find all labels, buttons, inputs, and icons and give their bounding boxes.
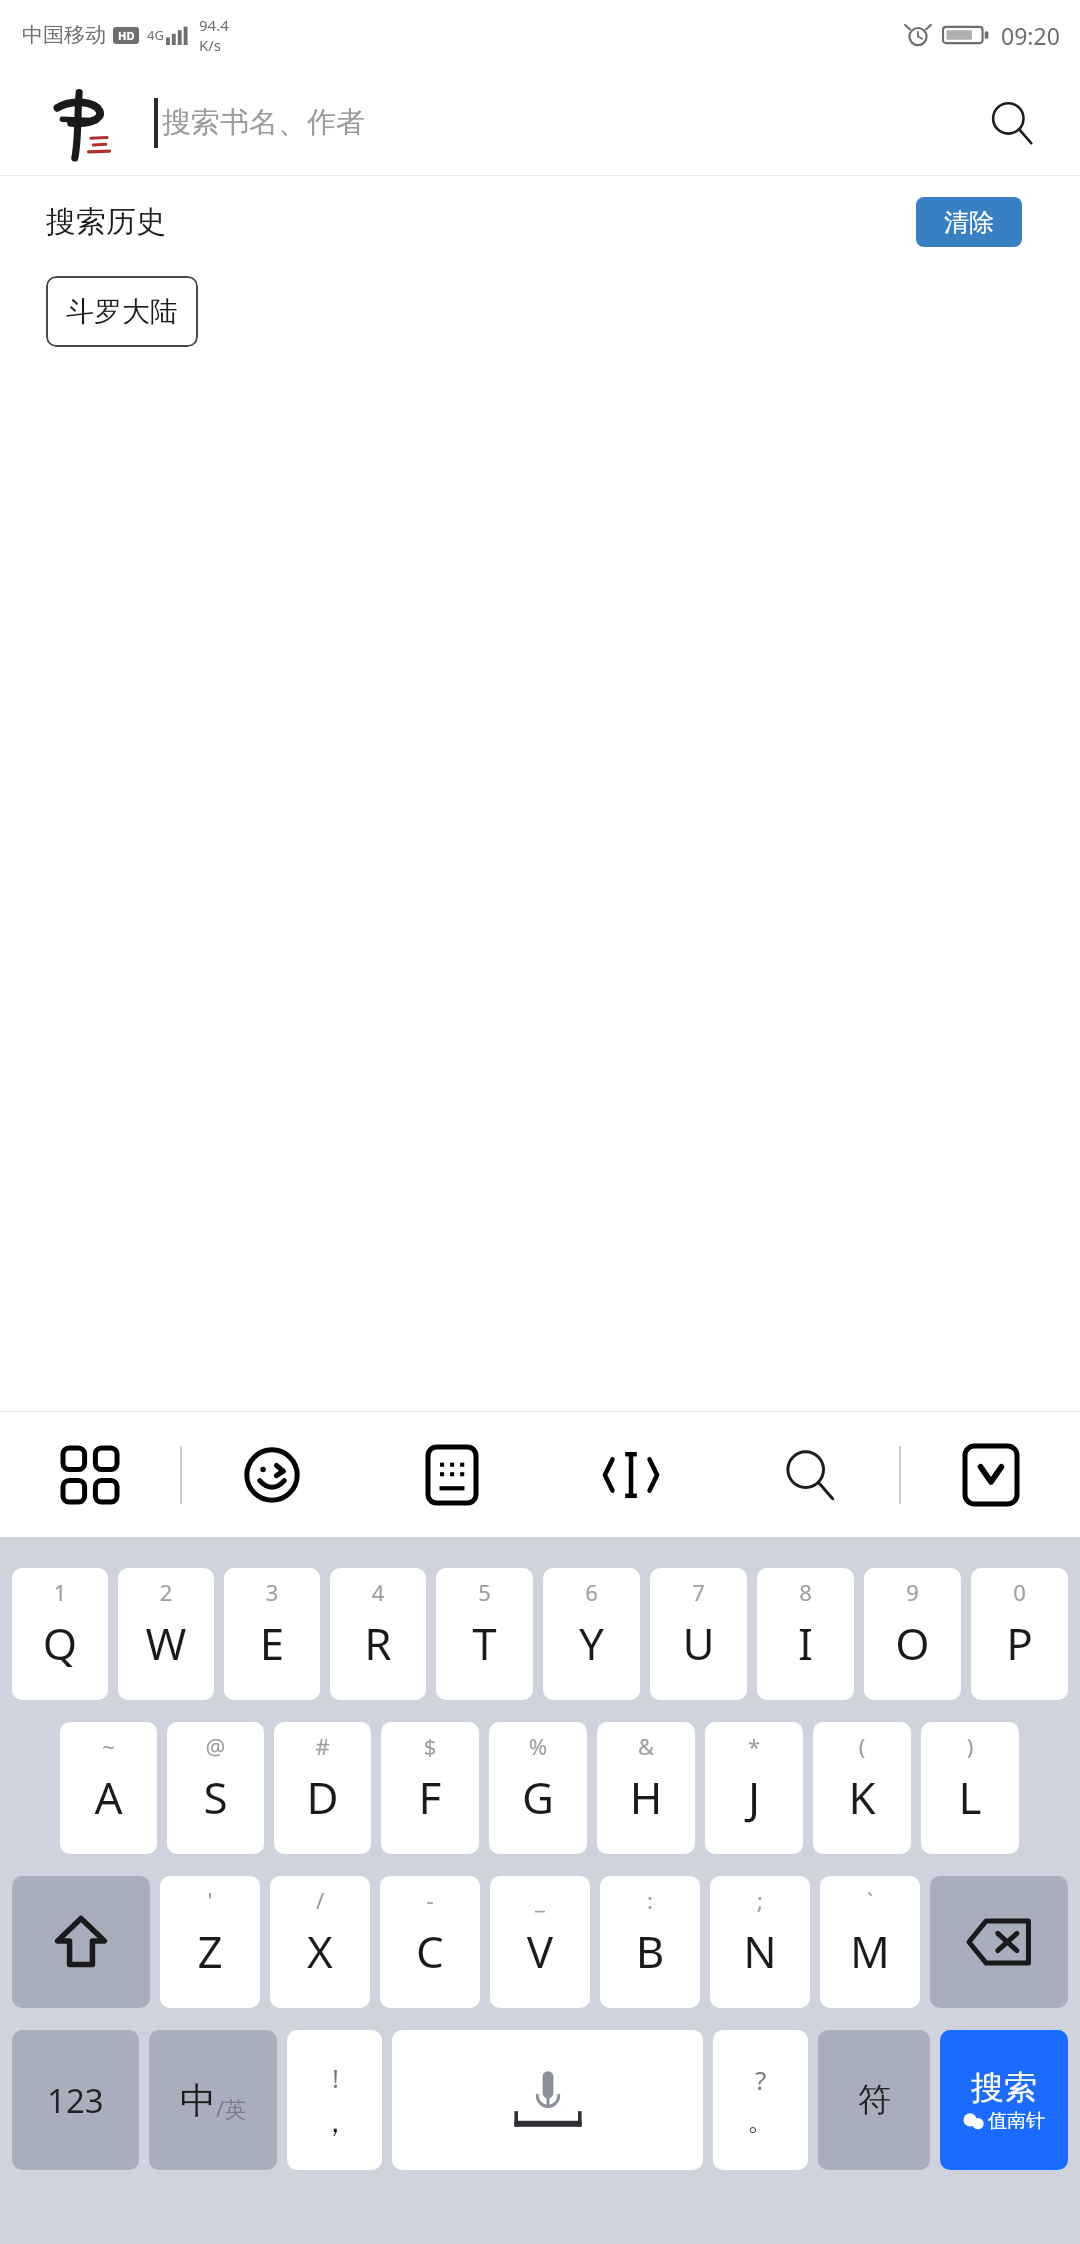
staticText: _ [490,1885,590,1915]
staticText: G [489,1767,587,1827]
staticText: 搜索 [971,2067,1037,2109]
staticText: R [330,1613,426,1673]
staticText: 清除 [944,207,994,238]
staticText: ) [921,1731,1019,1761]
button[interactable]: Search [720,1412,899,1537]
button[interactable]: 6 [543,1568,640,1700]
button[interactable]: Symbols [818,2030,930,2170]
button[interactable]: Hide keyboard [901,1412,1080,1537]
button[interactable]: 2 [118,1568,214,1700]
button[interactable]: Emoji [182,1412,362,1537]
staticText: P [971,1613,1068,1673]
button[interactable]: @ [167,1722,264,1854]
staticText: U [650,1613,747,1673]
button[interactable]: Period [713,2030,808,2170]
staticText: 中国移动 [22,22,106,48]
staticText: K/s [199,35,222,55]
button[interactable]: 123 [12,2030,139,2170]
staticText: J [705,1767,803,1827]
button[interactable]: 5 [436,1568,533,1700]
button[interactable]: Keyboard layout [362,1412,541,1537]
button[interactable]: 1 [12,1568,108,1700]
staticText: L [921,1767,1019,1827]
staticText: X [270,1921,370,1981]
staticText: S [167,1767,264,1827]
staticText: /英 [216,2093,247,2123]
staticText: 0 [971,1577,1068,1607]
staticText: 9 [864,1577,961,1607]
button[interactable]: 0 [971,1568,1068,1700]
button[interactable]: Space [392,2030,703,2170]
button[interactable]: ~ [60,1722,157,1854]
button[interactable]: Apps [0,1412,180,1537]
button[interactable]: 9 [864,1568,961,1700]
button[interactable]: ( [813,1722,911,1854]
staticText: I [757,1613,854,1673]
staticText: M [820,1921,920,1981]
button[interactable]: : [600,1876,700,2008]
button[interactable]: / [270,1876,370,2008]
staticText: ? [755,2062,767,2097]
staticText: H [597,1767,695,1827]
button[interactable]: Chinese English toggle [149,2030,277,2170]
staticText: HD [118,28,135,43]
button[interactable]: 斗罗大陆 [46,276,198,347]
staticText: 搜索历史 [46,203,166,241]
staticText: 6 [543,1577,640,1607]
staticText: N [710,1921,810,1981]
staticText: T [436,1613,533,1673]
button[interactable]: 清除 [916,197,1022,247]
staticText: $ [381,1731,479,1761]
button[interactable]: 7 [650,1568,747,1700]
staticText: V [490,1921,590,1981]
button[interactable]: 8 [757,1568,854,1700]
staticText: ` [820,1885,920,1915]
button[interactable]: Search [962,73,1062,173]
staticText: 94.4 [199,15,229,35]
staticText: Z [160,1921,260,1981]
staticText: 7 [650,1577,747,1607]
staticText: E [224,1613,320,1673]
button[interactable]: ' [160,1876,260,2008]
button[interactable]: ` [820,1876,920,2008]
staticText: Q [12,1613,108,1673]
button[interactable]: 3 [224,1568,320,1700]
button[interactable]: * [705,1722,803,1854]
staticText: ( [813,1731,911,1761]
staticText: 4 [330,1577,426,1607]
button[interactable]: 搜索 [940,2030,1068,2170]
staticText: * [705,1731,803,1761]
staticText: 。 [747,2103,775,2138]
staticText: & [597,1731,695,1761]
button[interactable]: Text edit [541,1412,720,1537]
button[interactable]: # [274,1722,371,1854]
staticText: 5 [436,1577,533,1607]
button[interactable]: ; [710,1876,810,2008]
button[interactable]: Backspace [930,1876,1068,2008]
staticText: 斗罗大陆 [66,294,178,329]
button[interactable]: - [380,1876,480,2008]
staticText: B [600,1921,700,1981]
staticText: # [274,1731,371,1761]
button[interactable]: & [597,1722,695,1854]
button[interactable]: _ [490,1876,590,2008]
button[interactable]: 4 [330,1568,426,1700]
staticText: 123 [47,2078,104,2123]
staticText: 中 [180,2078,216,2123]
staticText: 09:20 [1001,20,1060,51]
staticText: ! [332,2060,339,2095]
staticText: O [864,1613,961,1673]
staticText: 符 [858,2079,891,2121]
staticText: C [380,1921,480,1981]
staticText: Y [543,1613,640,1673]
staticText: ~ [60,1731,157,1761]
button[interactable]: ) [921,1722,1019,1854]
staticText: / [270,1885,370,1915]
button[interactable]: % [489,1722,587,1854]
button[interactable]: $ [381,1722,479,1854]
button[interactable]: Comma [287,2030,382,2170]
staticText: ' [160,1885,260,1915]
button[interactable]: Shift [12,1876,150,2008]
staticText: % [489,1731,587,1761]
staticText: 搜索书名、作者 [162,104,962,141]
